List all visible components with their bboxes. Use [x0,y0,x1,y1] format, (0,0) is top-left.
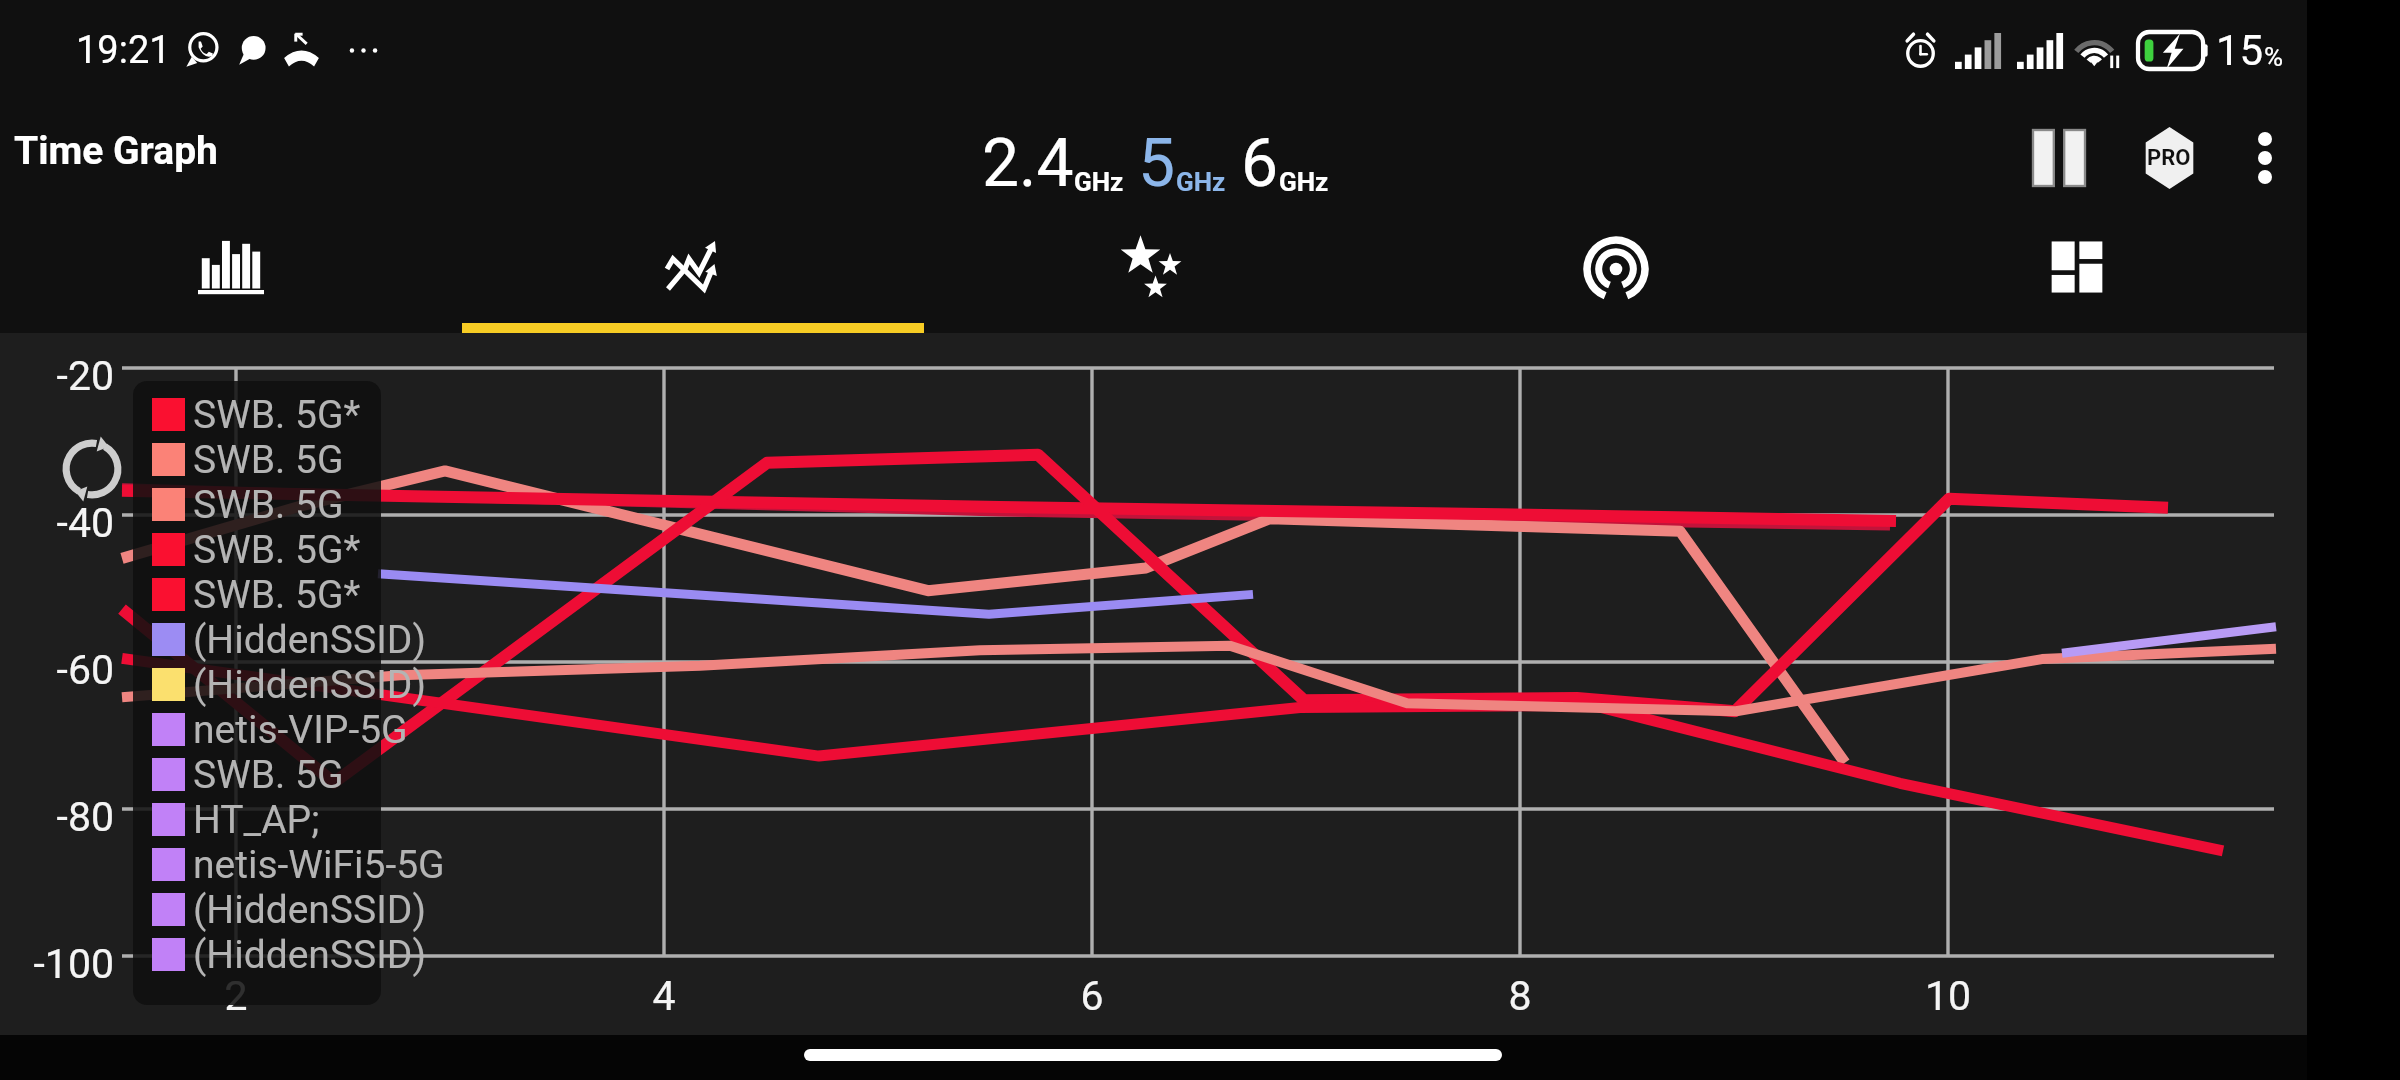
staticText: -80 [0,793,114,841]
staticText: netis-WiFi5-5G [193,842,445,887]
staticText: (HiddenSSID) [193,617,426,662]
staticText: GHz [1279,167,1329,197]
staticText: 5 [1138,125,1176,202]
button[interactable]: Signal meter [1385,218,1846,333]
staticText: SWB. 5G* [193,527,361,572]
staticText: 15 [2216,26,2264,75]
staticText: SWB. 5G [193,752,344,797]
staticText: PRO [2147,145,2191,171]
staticText: HT_AP; [193,797,320,842]
staticText: GHz [1074,167,1124,197]
staticText: 19:21 [76,28,171,73]
staticText: 6 [1032,972,1152,1020]
staticText: (HiddenSSID) [193,887,426,932]
staticText: (HiddenSSID) [193,662,426,707]
staticText: -60 [0,646,114,694]
staticText: 10 [1888,972,2008,1020]
button[interactable]: 2.4 [982,125,1124,202]
staticText: 2.4 [982,125,1074,202]
staticText: (HiddenSSID) [193,932,426,977]
button[interactable]: Time graph [462,218,924,333]
staticText: 2 [176,972,296,1020]
staticText: -100 [0,940,114,988]
button[interactable]: More options [2215,100,2315,218]
button[interactable]: Upgrade to Pro [2119,100,2219,218]
button[interactable]: Channel rating [0,218,462,333]
staticText: SWB. 5G* [193,392,361,437]
staticText: 6 [1241,125,1279,202]
button[interactable]: Overview [1846,218,2307,333]
staticText: netis-VIP-5G [193,707,408,752]
staticText: SWB. 5G* [193,572,361,617]
staticText: 4 [604,972,724,1020]
button[interactable]: 6 [1241,125,1329,202]
staticText: 8 [1460,972,1580,1020]
staticText: SWB. 5G [193,437,344,482]
button[interactable]: 5 [1138,125,1226,202]
staticText: -20 [0,352,114,400]
staticText: SWB. 5G [193,482,344,527]
staticText: GHz [1176,167,1226,197]
button[interactable]: Channel rating stars [924,218,1385,333]
button[interactable]: Pause [2009,100,2109,218]
staticText: % [2264,42,2284,72]
staticText: Time Graph [14,128,218,174]
staticText: -40 [0,499,114,547]
